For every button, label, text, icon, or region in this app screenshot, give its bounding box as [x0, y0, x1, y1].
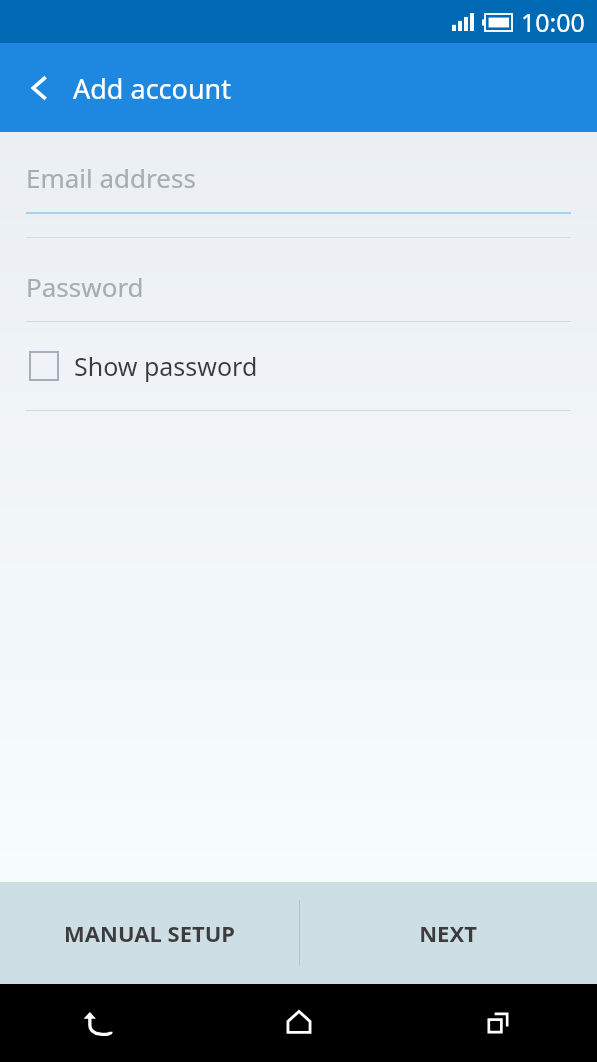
button[interactable]: Email address	[0, 132, 597, 214]
staticText: Add account	[73, 70, 232, 107]
staticText: 10:00	[521, 5, 585, 39]
button[interactable]: MANUAL SETUP	[0, 882, 299, 984]
button[interactable]: Back	[0, 984, 199, 1062]
button[interactable]: NEXT	[299, 882, 597, 984]
button[interactable]: Recent apps	[398, 984, 597, 1062]
button[interactable]: Back	[11, 60, 67, 116]
staticText: NEXT	[419, 918, 477, 948]
button[interactable]: Home	[199, 984, 398, 1062]
staticText: Show password	[74, 349, 258, 383]
staticText: Password	[26, 269, 144, 304]
staticText: MANUAL SETUP	[64, 918, 235, 948]
button[interactable]: Password	[0, 238, 597, 322]
button[interactable]: Show password	[0, 322, 597, 410]
staticText: Email address	[26, 160, 196, 195]
